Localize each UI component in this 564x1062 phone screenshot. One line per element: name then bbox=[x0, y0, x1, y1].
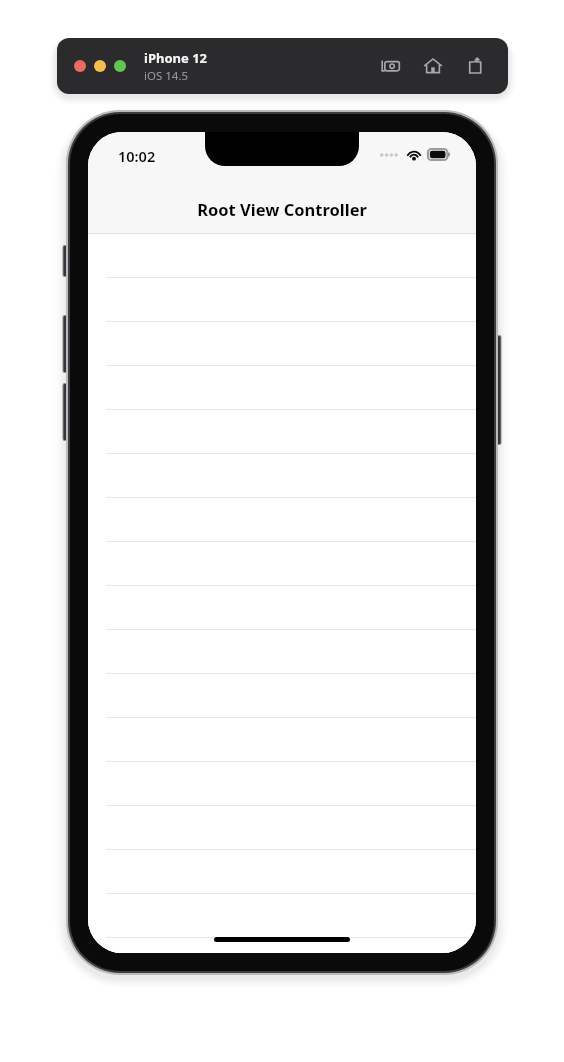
button[interactable] bbox=[88, 586, 476, 630]
staticText: iPhone 12 bbox=[144, 49, 207, 67]
button[interactable] bbox=[88, 410, 476, 454]
button[interactable] bbox=[88, 850, 476, 894]
button[interactable]: Rotate bbox=[462, 53, 488, 79]
button[interactable] bbox=[88, 322, 476, 366]
staticText: 10:02 bbox=[118, 146, 156, 166]
button[interactable] bbox=[88, 234, 476, 278]
button[interactable] bbox=[88, 674, 476, 718]
button[interactable]: Minimize bbox=[94, 60, 106, 72]
button[interactable] bbox=[88, 806, 476, 850]
button[interactable]: Zoom bbox=[114, 60, 126, 72]
button[interactable] bbox=[88, 894, 476, 938]
button[interactable] bbox=[88, 718, 476, 762]
button[interactable]: Take screenshot bbox=[378, 53, 404, 79]
button[interactable] bbox=[88, 278, 476, 322]
button[interactable] bbox=[88, 630, 476, 674]
staticText: Root View Controller bbox=[88, 198, 476, 220]
staticText: iOS 14.5 bbox=[144, 68, 189, 84]
button[interactable] bbox=[88, 454, 476, 498]
button[interactable] bbox=[88, 366, 476, 410]
button[interactable] bbox=[88, 498, 476, 542]
button[interactable] bbox=[88, 542, 476, 586]
button[interactable] bbox=[88, 938, 476, 953]
button[interactable]: Close bbox=[74, 60, 86, 72]
button[interactable]: Home bbox=[420, 53, 446, 79]
button[interactable] bbox=[88, 762, 476, 806]
